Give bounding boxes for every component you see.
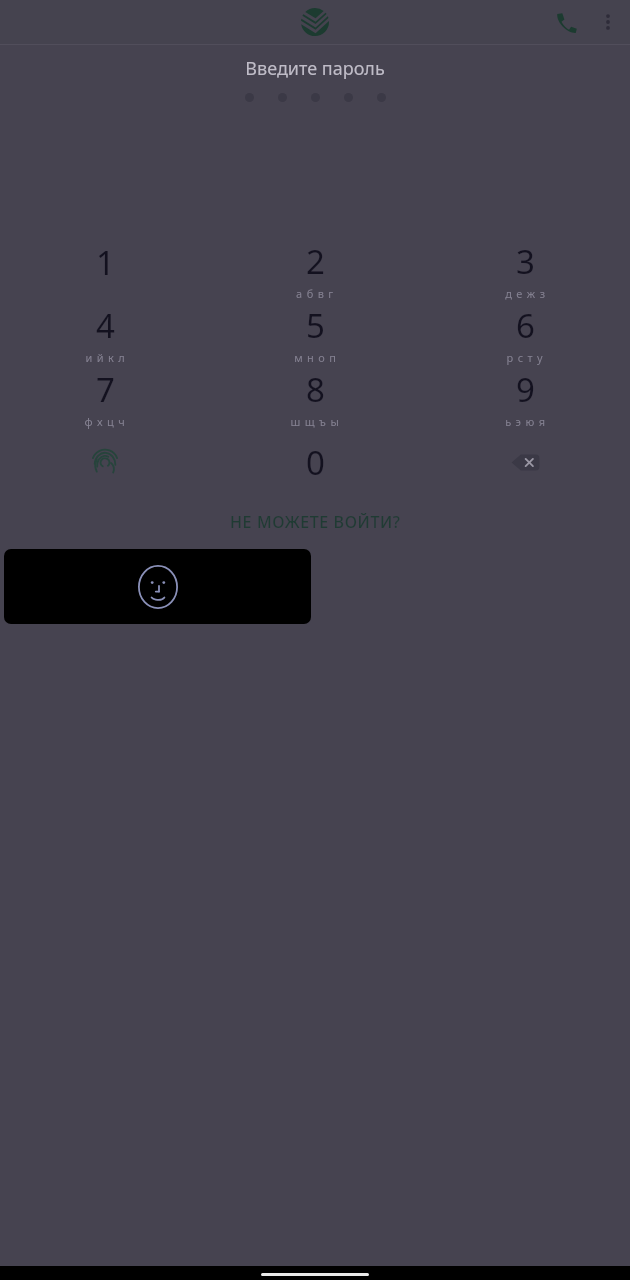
staticText: 0 — [306, 440, 325, 485]
staticText: и й к л — [85, 350, 126, 365]
staticText: 8 — [306, 367, 325, 412]
button[interactable]: НЕ МОЖЕТЕ ВОЙТИ? — [210, 505, 421, 539]
staticText: м н о п — [294, 350, 337, 365]
staticText: 3 — [516, 239, 535, 284]
staticText: 6 — [516, 303, 535, 348]
button[interactable]: Sber logo — [293, 0, 337, 44]
staticText: 9 — [516, 367, 535, 412]
staticText: Введите пароль — [245, 56, 385, 81]
staticText: 1 — [96, 240, 115, 285]
button[interactable]: 2 — [210, 238, 420, 302]
button[interactable]: 4 — [0, 302, 210, 366]
button[interactable]: 1 — [0, 238, 210, 302]
staticText: 5 — [306, 303, 325, 348]
button[interactable]: 5 — [210, 302, 420, 366]
staticText: ф х ц ч — [84, 414, 126, 429]
staticText: 7 — [96, 367, 115, 412]
button[interactable]: 0 — [210, 430, 420, 494]
staticText: а б в г — [296, 286, 334, 301]
staticText: 2 — [306, 239, 325, 284]
button[interactable]: 9 — [420, 366, 630, 430]
staticText: ь э ю я — [505, 414, 546, 429]
staticText: р с т у — [506, 350, 544, 365]
button[interactable]: Face unlock — [4, 549, 311, 624]
staticText: 4 — [96, 303, 115, 348]
button[interactable]: Call — [546, 2, 586, 42]
button[interactable]: 3 — [420, 238, 630, 302]
button[interactable]: More options — [588, 2, 628, 42]
button[interactable]: 7 — [0, 366, 210, 430]
staticText: НЕ МОЖЕТЕ ВОЙТИ? — [230, 511, 401, 533]
button[interactable]: Fingerprint login — [0, 430, 210, 494]
staticText: ш щ ъ ы — [290, 414, 340, 429]
staticText: д е ж з — [505, 286, 546, 301]
button[interactable]: Backspace — [420, 430, 630, 494]
button[interactable]: 8 — [210, 366, 420, 430]
button[interactable]: 6 — [420, 302, 630, 366]
